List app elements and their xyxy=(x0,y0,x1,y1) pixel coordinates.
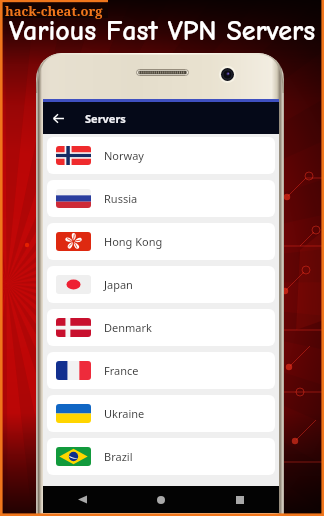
button[interactable]: Recent apps xyxy=(200,486,279,513)
staticText: Servers xyxy=(85,111,126,126)
staticText: Brazil xyxy=(104,449,133,464)
button[interactable]: Hong Kong xyxy=(47,223,275,260)
button[interactable]: Brazil xyxy=(47,438,275,475)
staticText: Ukraine xyxy=(104,406,145,421)
staticText: France xyxy=(104,363,139,378)
button[interactable]: Denmark xyxy=(47,309,275,346)
staticText: Hong Kong xyxy=(104,234,163,249)
button[interactable]: Japan xyxy=(47,266,275,303)
staticText: Various Fast VPN Servers xyxy=(9,15,316,47)
staticText: Denmark xyxy=(104,320,152,335)
button[interactable]: Home xyxy=(121,486,200,513)
button[interactable]: Norway xyxy=(47,137,275,174)
button[interactable]: France xyxy=(47,352,275,389)
staticText: hack-cheat.org xyxy=(5,2,103,20)
staticText: Russia xyxy=(104,191,138,206)
button[interactable]: Russia xyxy=(47,180,275,217)
button[interactable]: Ukraine xyxy=(47,395,275,432)
button[interactable]: Navigate up xyxy=(43,102,73,134)
staticText: Japan xyxy=(104,277,133,292)
button[interactable]: Back xyxy=(43,486,121,513)
staticText: Norway xyxy=(104,148,144,163)
